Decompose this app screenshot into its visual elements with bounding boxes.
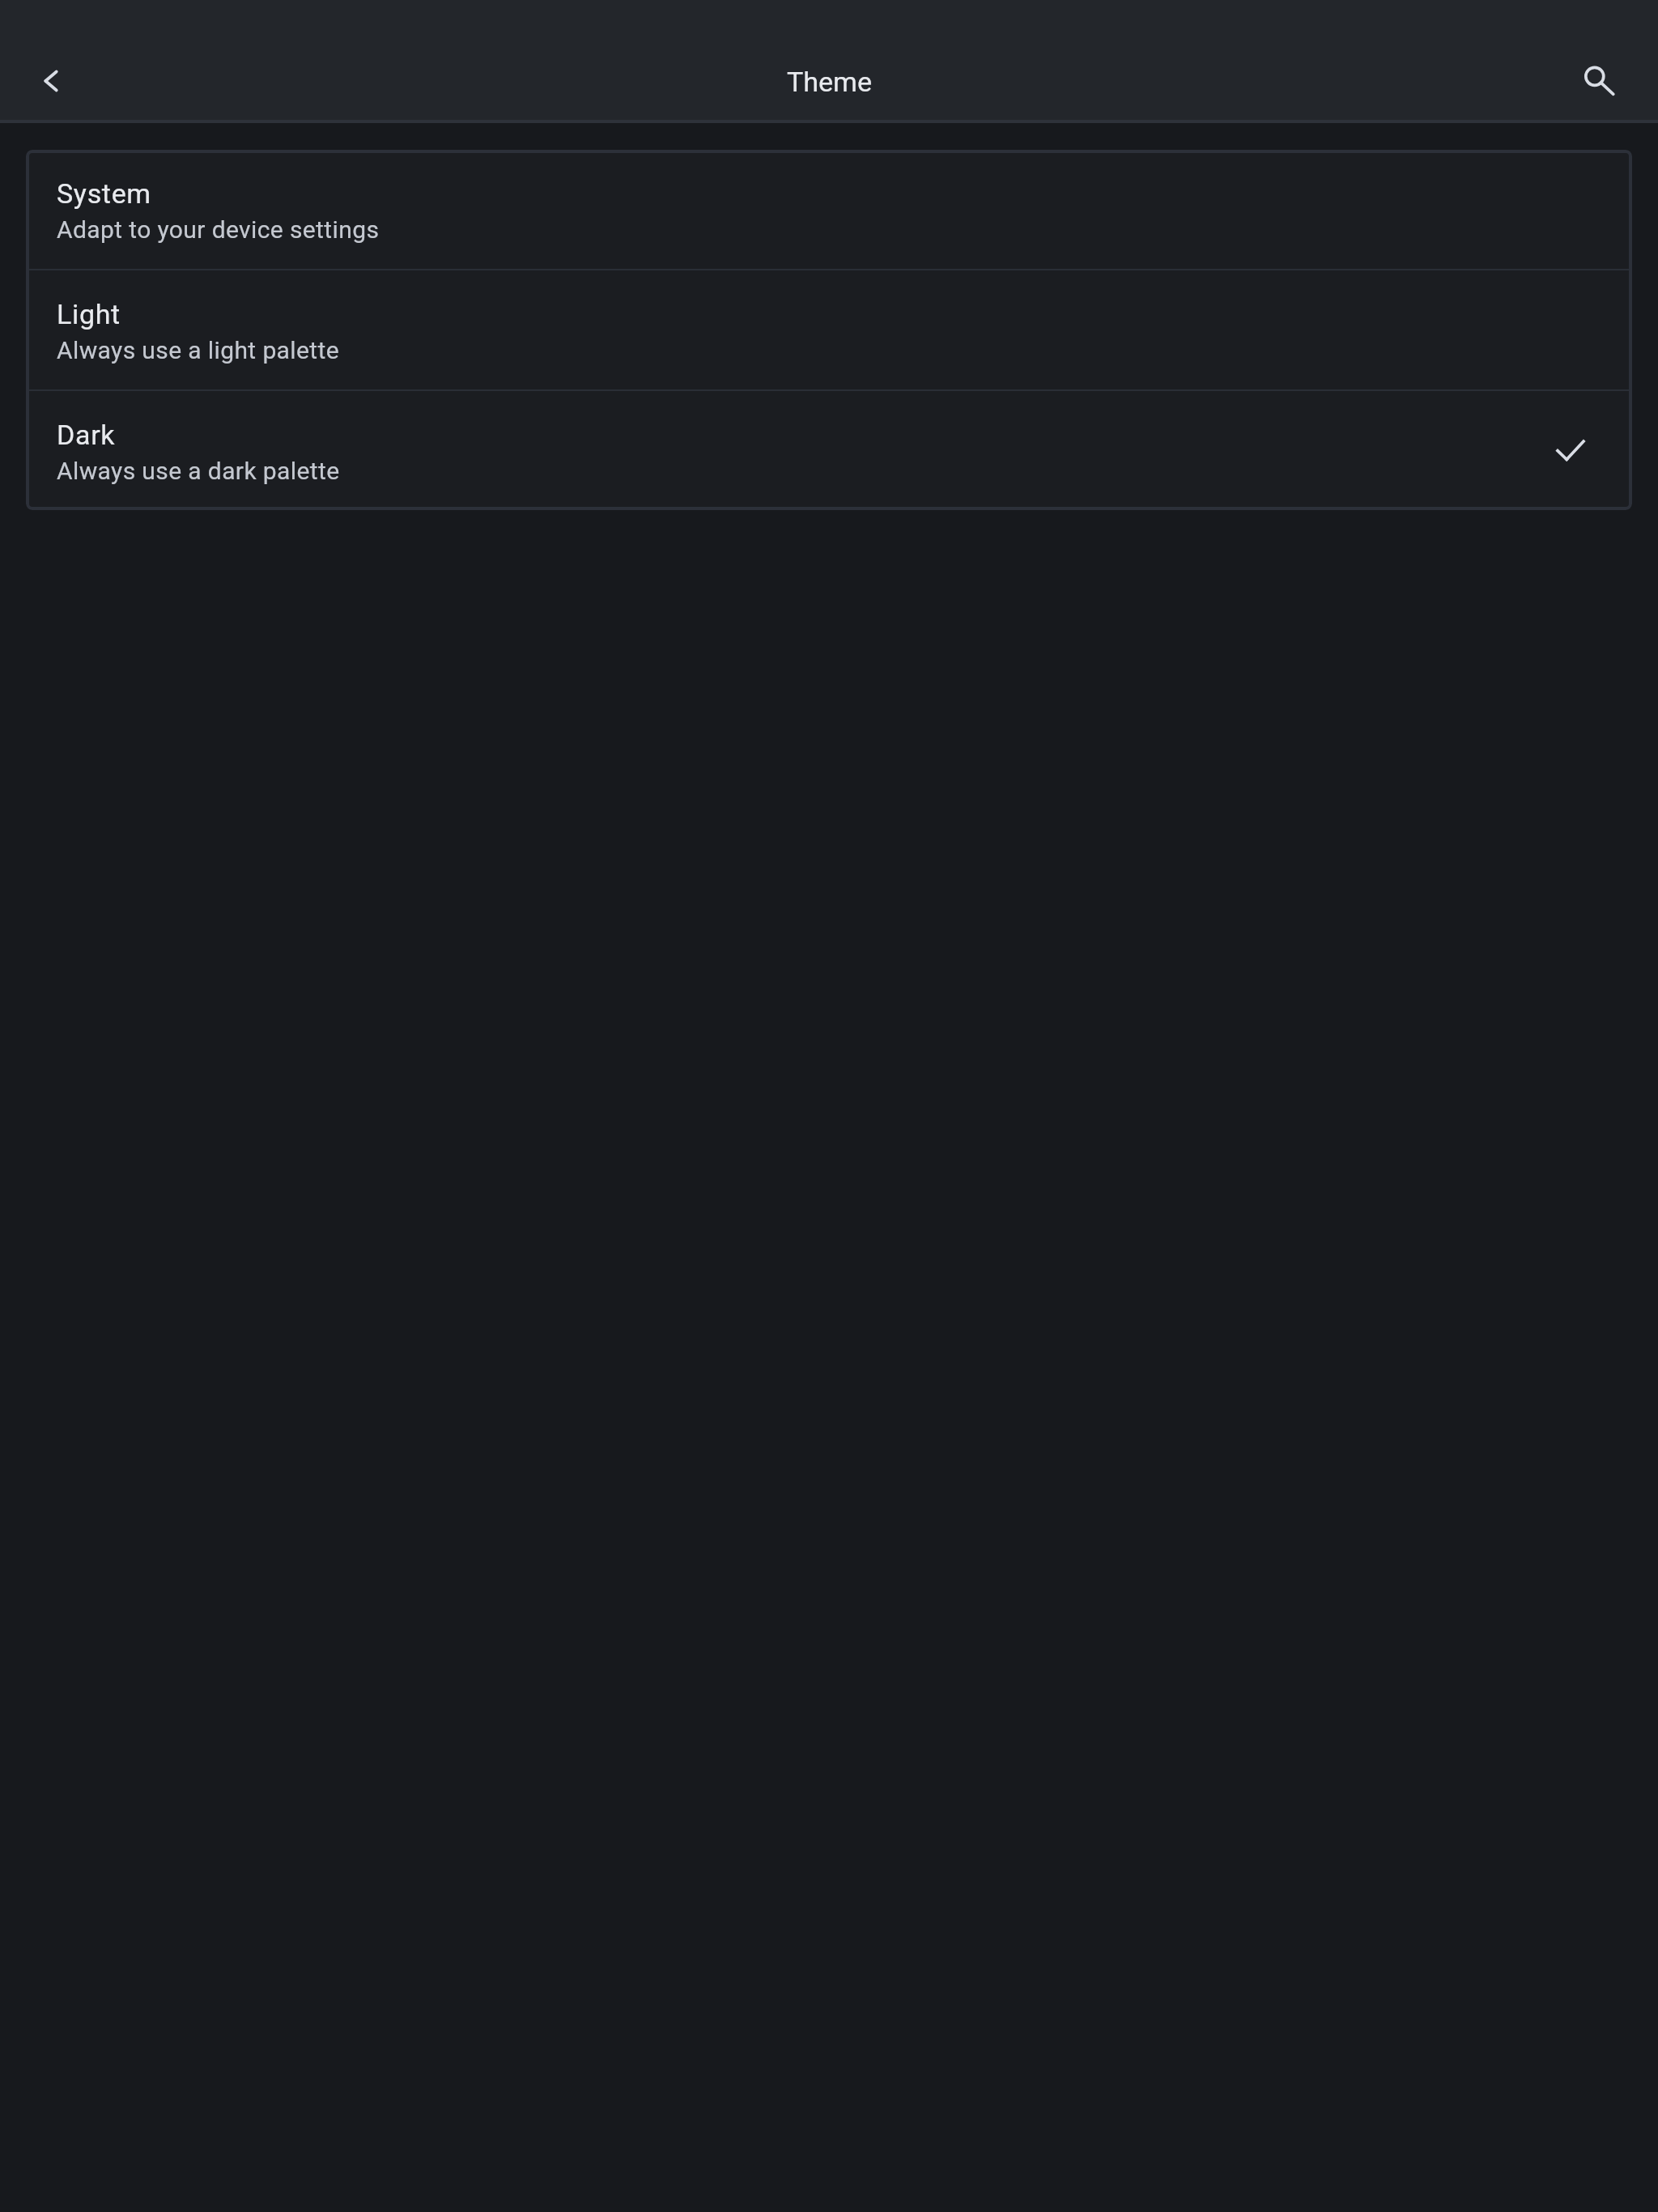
- button[interactable]: Search: [1546, 32, 1643, 130]
- button[interactable]: Back: [2, 32, 100, 130]
- button[interactable]: Light: [26, 270, 1632, 389]
- staticText: Light: [57, 298, 121, 330]
- button[interactable]: Dark: [26, 391, 1632, 510]
- button[interactable]: System: [26, 150, 1632, 269]
- staticText: Adapt to your device settings: [57, 215, 380, 244]
- staticText: Always use a light palette: [57, 336, 340, 364]
- staticText: Dark: [57, 419, 116, 451]
- staticText: System: [57, 177, 151, 210]
- staticText: Always use a dark palette: [57, 457, 340, 485]
- staticText: Theme: [787, 66, 872, 98]
